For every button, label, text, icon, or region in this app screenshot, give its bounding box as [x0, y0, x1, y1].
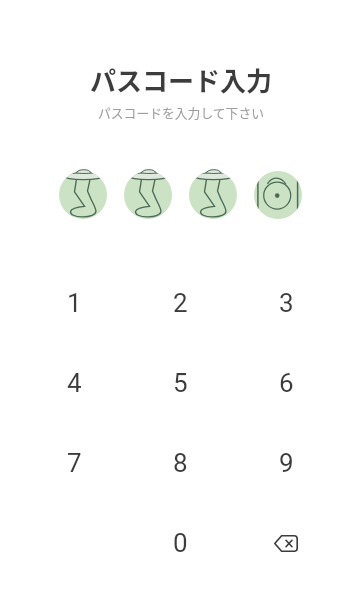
staticText: 2 [173, 288, 188, 318]
button[interactable]: 8 [127, 423, 233, 503]
button[interactable]: Backspace [233, 503, 339, 583]
button[interactable]: 0 [127, 503, 233, 583]
staticText: 4 [67, 368, 82, 398]
staticText: 8 [173, 448, 188, 478]
other: Backspace [264, 521, 308, 565]
button[interactable]: 4 [21, 343, 127, 423]
staticText: 0 [173, 528, 188, 558]
button[interactable]: 7 [21, 423, 127, 503]
staticText: パスコードを入力して下さい [1, 103, 360, 122]
staticText: パスコード入力 [1, 61, 360, 99]
button[interactable]: 2 [127, 263, 233, 343]
button[interactable]: 9 [233, 423, 339, 503]
staticText: 5 [173, 368, 188, 398]
button[interactable]: 6 [233, 343, 339, 423]
button[interactable]: 3 [233, 263, 339, 343]
staticText: 6 [279, 368, 294, 398]
staticText: 1 [67, 288, 82, 318]
staticText: 9 [279, 448, 294, 478]
staticText: 3 [279, 288, 294, 318]
button[interactable]: 1 [21, 263, 127, 343]
staticText: 7 [67, 448, 82, 478]
button[interactable]: 5 [127, 343, 233, 423]
